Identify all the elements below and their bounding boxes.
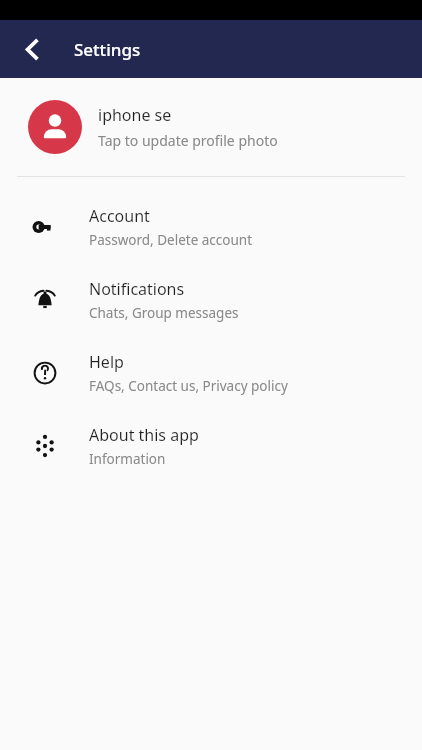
staticText: About this app [89,424,199,446]
staticText: Chats, Group messages [89,304,239,322]
button[interactable]: Account [0,190,422,263]
staticText: Information [89,450,166,468]
staticText: FAQs, Contact us, Privacy policy [89,377,288,395]
button[interactable]: Notifications [0,263,422,336]
staticText: Account [89,205,150,227]
staticText: Help [89,351,124,373]
button[interactable]: Help [0,336,422,409]
staticText: Tap to update profile photo [98,131,278,150]
staticText: Settings [74,38,141,61]
staticText: Password, Delete account [89,231,253,249]
button[interactable]: Back [8,26,54,72]
button[interactable]: About this app [0,409,422,482]
staticText: iphone se [98,104,172,126]
button[interactable]: iphone se [0,78,422,176]
staticText: Notifications [89,278,185,300]
